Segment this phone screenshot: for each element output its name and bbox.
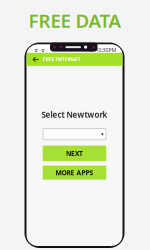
button[interactable]: NEXT [43, 146, 106, 161]
staticText: NEXT [66, 149, 83, 158]
staticText: ▾ [101, 131, 104, 137]
staticText: FREE INTERNET [42, 56, 80, 63]
button[interactable]: MORE APPS [43, 166, 106, 180]
staticText: Select Newtwork [41, 109, 107, 120]
staticText: MORE APPS [55, 168, 93, 177]
button[interactable]: Back [29, 53, 42, 66]
staticText: 10:30PM [95, 46, 116, 53]
staticText: FREE DATA [28, 8, 121, 33]
